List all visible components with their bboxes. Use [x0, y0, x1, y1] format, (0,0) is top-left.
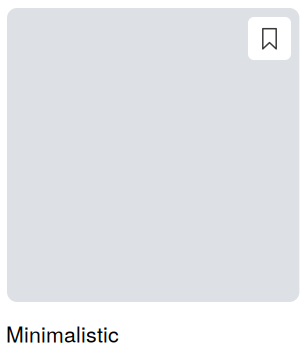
button[interactable]: Bookmark	[248, 17, 291, 60]
staticText: Minimalistic	[6, 318, 119, 348]
